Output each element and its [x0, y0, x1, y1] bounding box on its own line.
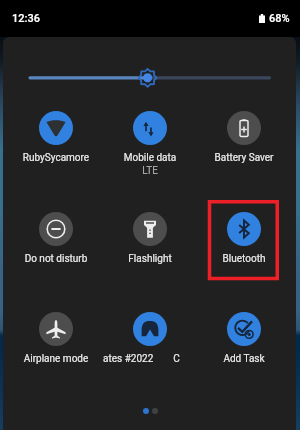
button[interactable]: Mobile data [103, 111, 197, 177]
button[interactable]: Brightness [0, 63, 300, 93]
staticText: Add Task [197, 353, 291, 365]
button[interactable]: Add Task [197, 312, 291, 365]
button[interactable]: Battery Saver [197, 111, 291, 164]
staticText: 68% [269, 12, 290, 25]
button[interactable]: Airplane mode [9, 312, 103, 365]
button[interactable]: Bluetooth [197, 212, 291, 265]
staticText: Battery Saver [197, 152, 291, 164]
staticText: ates #2022 C [103, 353, 197, 365]
staticText: LTE [142, 165, 158, 177]
button[interactable]: RubySycamore [9, 111, 103, 164]
staticText: Do not disturb [9, 253, 103, 265]
staticText: Bluetooth [197, 253, 291, 265]
button[interactable]: ates #2022 C [103, 312, 197, 365]
button[interactable]: Flashlight [103, 212, 197, 265]
button[interactable]: Do not disturb [9, 212, 103, 265]
staticText: RubySycamore [9, 152, 103, 164]
staticText: Flashlight [103, 253, 197, 265]
staticText: Airplane mode [9, 353, 103, 365]
staticText: 12:36 [12, 12, 40, 25]
staticText: Mobile data [103, 152, 197, 164]
